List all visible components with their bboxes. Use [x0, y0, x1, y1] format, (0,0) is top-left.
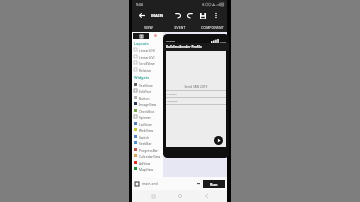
staticText: ImageView: [139, 102, 157, 106]
staticText: 12:07: [220, 40, 227, 43]
staticText: WebView: [139, 128, 154, 132]
button[interactable]: ProgressBar: [132, 146, 163, 153]
staticText: Send SMS 2019: [166, 85, 226, 89]
button[interactable]: CheckBox: [132, 107, 163, 114]
staticText: 9:34: [136, 2, 143, 7]
staticText: Number: [167, 92, 177, 95]
staticText: Android: [166, 39, 175, 42]
button[interactable]: AdView: [132, 159, 163, 166]
button[interactable]: ImageView: [132, 100, 163, 107]
button[interactable]: MapView: [132, 165, 163, 172]
button[interactable]: EVENT: [164, 22, 196, 32]
button[interactable]: Redo: [184, 9, 195, 22]
staticText: Switch: [139, 135, 150, 139]
staticText: EVENT: [174, 25, 186, 30]
button[interactable]: SeekBar: [132, 139, 163, 146]
button[interactable]: CalendarView: [132, 152, 163, 159]
button[interactable]: main.xml: [132, 177, 197, 190]
staticText: LinearL(V): [139, 55, 155, 59]
staticText: ProgressBar: [139, 148, 158, 152]
button[interactable]: Button: [132, 94, 163, 101]
button[interactable]: Spinner: [132, 113, 163, 120]
button[interactable]: Send SMS: [214, 136, 223, 145]
staticText: Widgets: [134, 75, 150, 80]
staticText: Button: [139, 96, 150, 100]
button[interactable]: Run: [203, 180, 225, 188]
button[interactable]: Back: [136, 9, 147, 22]
staticText: COMPONENT: [201, 25, 224, 30]
staticText: main.xml: [142, 181, 158, 186]
staticText: MapView: [139, 167, 154, 171]
staticText: Run: [210, 182, 218, 187]
staticText: TextView: [139, 83, 153, 87]
button[interactable]: Recents: [147, 190, 159, 202]
staticText: Relative: [139, 68, 152, 72]
staticText: AdView: [139, 161, 151, 165]
staticText: SeekBar: [139, 141, 152, 145]
staticText: BulkSmsSender Profile: [166, 45, 202, 49]
staticText: CalendarView: [139, 154, 161, 158]
button[interactable]: Undo: [172, 9, 183, 22]
staticText: ScrollView: [139, 61, 155, 65]
staticText: Layouts: [134, 41, 149, 46]
button[interactable]: WebView: [132, 126, 163, 133]
button[interactable]: COMPONENT: [196, 22, 228, 32]
button[interactable]: More options: [210, 9, 221, 22]
button[interactable]: Switch: [132, 133, 163, 140]
button[interactable]: LinearL(H): [132, 46, 163, 53]
button[interactable]: Home: [174, 190, 186, 202]
staticText: Spinner: [139, 115, 151, 119]
staticText: Message: [167, 99, 178, 102]
button[interactable]: LinearL(V): [132, 53, 163, 60]
button[interactable]: Save: [197, 9, 208, 22]
button[interactable]: ListView: [132, 120, 163, 127]
button[interactable]: VIEW: [133, 22, 164, 32]
staticText: EditText: [139, 89, 152, 93]
staticText: LinearL(H): [139, 48, 155, 52]
button[interactable]: ScrollView: [132, 59, 163, 66]
button[interactable]: TextView: [132, 81, 163, 88]
staticText: CheckBox: [139, 109, 155, 113]
staticText: ListView: [139, 122, 152, 126]
button[interactable]: EditText: [132, 87, 163, 94]
staticText: VIEW: [144, 25, 153, 30]
button[interactable]: Relative: [132, 66, 163, 73]
staticText: MAIN: [151, 13, 164, 19]
button[interactable]: Palette tab: [133, 33, 149, 39]
button[interactable]: Back: [200, 190, 212, 202]
